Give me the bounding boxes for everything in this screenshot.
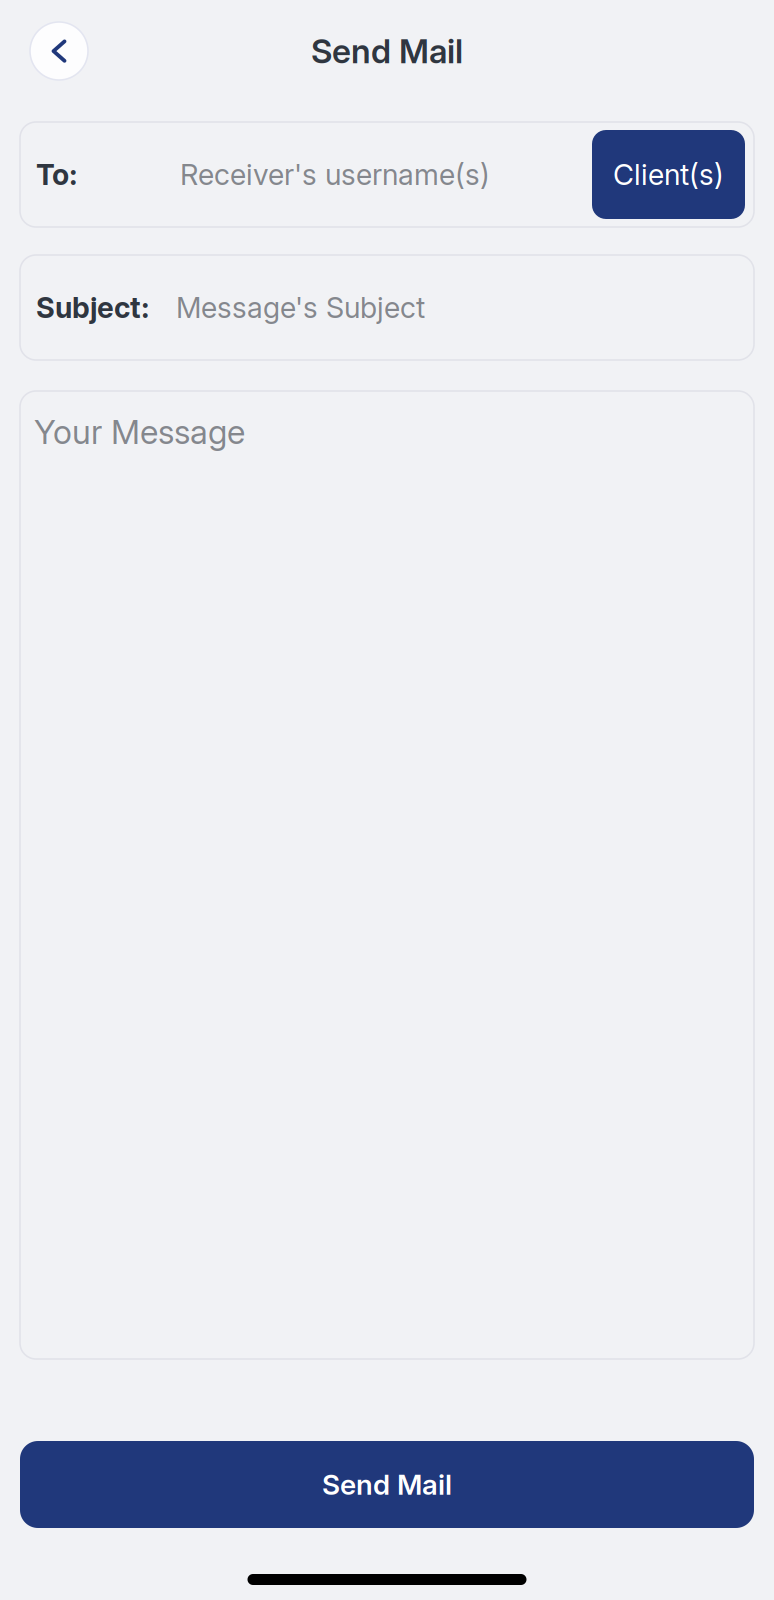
staticText: Client(s) — [613, 157, 724, 192]
staticText: Your Message — [34, 412, 245, 452]
staticText: To: — [36, 157, 78, 192]
button[interactable]: Back — [30, 22, 88, 80]
button[interactable]: Send Mail — [20, 1441, 754, 1528]
staticText: Subject: — [36, 290, 150, 325]
staticText: Receiver's username(s) — [180, 157, 490, 192]
staticText: Send Mail — [311, 31, 463, 71]
staticText: Message's Subject — [176, 290, 425, 325]
staticText: Send Mail — [322, 1468, 452, 1501]
button[interactable]: Client(s) — [592, 130, 745, 219]
